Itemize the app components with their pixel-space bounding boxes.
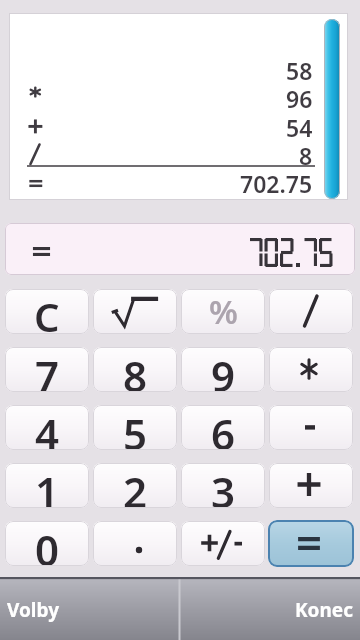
staticText: C (34, 289, 60, 334)
button[interactable]: 8 (93, 347, 177, 392)
staticText: 702.75 (240, 168, 313, 196)
button[interactable]: 3 (181, 463, 265, 508)
staticText: 1 (35, 463, 60, 508)
staticText: 8 (299, 140, 313, 168)
staticText: 2 (123, 463, 148, 508)
staticText: % (209, 289, 238, 334)
button[interactable] (268, 520, 354, 567)
button[interactable] (269, 463, 353, 508)
staticText: 6 (211, 405, 236, 450)
staticText: 0 (35, 521, 60, 566)
staticText: 54 (286, 112, 313, 140)
button[interactable] (269, 289, 353, 334)
button[interactable]: 6 (181, 405, 265, 450)
staticText: 5 (123, 405, 148, 450)
staticText: Konec (295, 597, 353, 623)
button[interactable] (93, 521, 177, 566)
staticText: 7 (35, 347, 60, 392)
button[interactable]: 0 (5, 521, 89, 566)
button[interactable] (181, 521, 265, 566)
staticText: 9 (211, 347, 236, 392)
staticText: 3 (211, 463, 236, 508)
button[interactable]: 4 (5, 405, 89, 450)
button[interactable]: Volby (0, 579, 178, 640)
button[interactable]: 5 (93, 405, 177, 450)
staticText: Volby (7, 597, 59, 623)
button[interactable] (269, 405, 353, 450)
button[interactable]: % (181, 289, 265, 334)
button[interactable]: 1 (5, 463, 89, 508)
button[interactable]: 2 (93, 463, 177, 508)
button[interactable]: 7 (5, 347, 89, 392)
button[interactable]: Konec (181, 579, 360, 640)
button[interactable]: C (5, 289, 89, 334)
staticText: 58 (286, 55, 313, 83)
button[interactable] (93, 289, 177, 334)
staticText: 96 (286, 83, 313, 111)
staticText: 8 (123, 347, 148, 392)
staticText: 4 (35, 405, 60, 450)
button[interactable] (269, 347, 353, 392)
button[interactable]: 9 (181, 347, 265, 392)
